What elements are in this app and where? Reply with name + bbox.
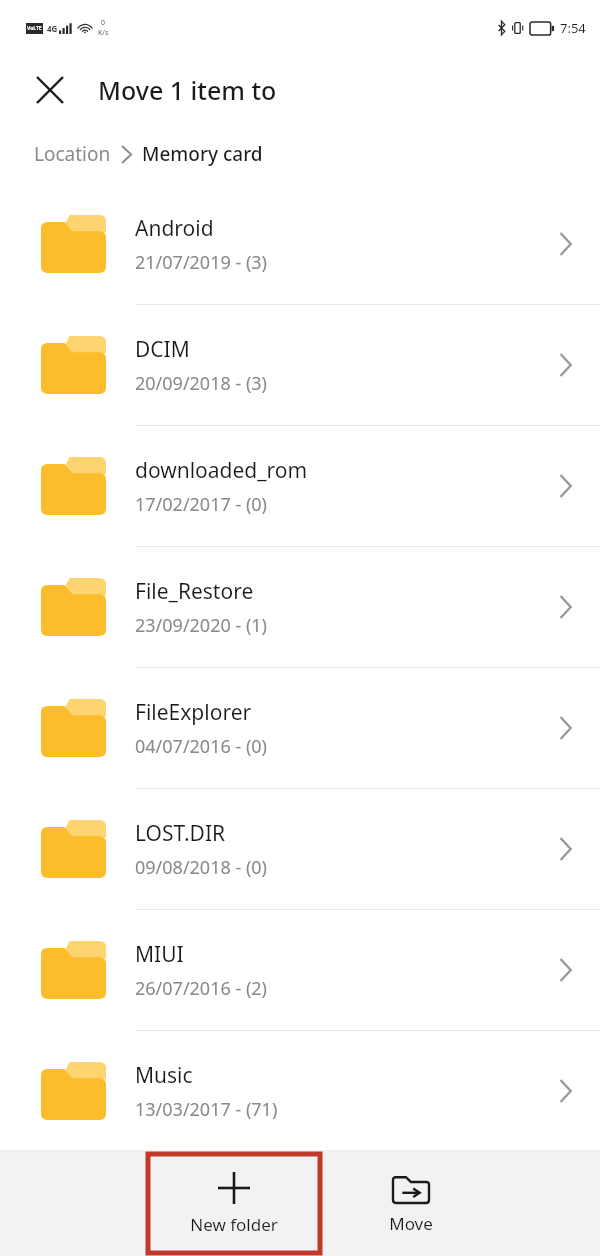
button[interactable]: New folder <box>148 1154 320 1253</box>
staticText: New folder <box>190 1213 278 1236</box>
staticText: 21/07/2019 - (3) <box>135 250 268 275</box>
staticText: DCIM <box>135 335 190 364</box>
staticText: Android <box>135 214 214 243</box>
staticText: VoLTE <box>27 25 42 32</box>
staticText: downloaded_rom <box>135 456 308 485</box>
button[interactable]: Music <box>0 1031 600 1151</box>
staticText: LOST.DIR <box>135 819 226 848</box>
staticText: File_Restore <box>135 577 254 606</box>
staticText: 7:54 <box>560 19 586 37</box>
button[interactable]: Android <box>0 184 600 305</box>
button[interactable]: MIUI <box>0 910 600 1031</box>
staticText: 13/03/2017 - (71) <box>135 1097 278 1122</box>
staticText: 20/09/2018 - (3) <box>135 371 268 396</box>
button[interactable]: FileExplorer <box>0 668 600 789</box>
button[interactable]: DCIM <box>0 305 600 426</box>
button[interactable]: downloaded_rom <box>0 426 600 547</box>
staticText: FileExplorer <box>135 698 252 727</box>
staticText: Location <box>34 141 111 167</box>
staticText: Move <box>389 1212 433 1235</box>
button[interactable]: Close <box>28 68 72 112</box>
staticText: 17/02/2017 - (0) <box>135 492 268 517</box>
button[interactable]: File_Restore <box>0 547 600 668</box>
staticText: Memory card <box>142 141 263 167</box>
staticText: K/s <box>98 28 109 38</box>
staticText: 26/07/2016 - (2) <box>135 976 268 1001</box>
staticText: Move 1 item to <box>98 73 277 107</box>
staticText: 23/09/2020 - (1) <box>135 613 268 638</box>
staticText: 04/07/2016 - (0) <box>135 734 268 759</box>
button[interactable]: Move <box>356 1154 466 1253</box>
staticText: 0 <box>101 18 106 28</box>
button[interactable]: LOST.DIR <box>0 789 600 910</box>
button[interactable]: Memory card <box>142 141 263 167</box>
staticText: Music <box>135 1061 193 1090</box>
staticText: 4G <box>47 23 58 34</box>
button[interactable]: Location <box>34 141 111 167</box>
staticText: MIUI <box>135 940 184 969</box>
staticText: 09/08/2018 - (0) <box>135 855 268 880</box>
